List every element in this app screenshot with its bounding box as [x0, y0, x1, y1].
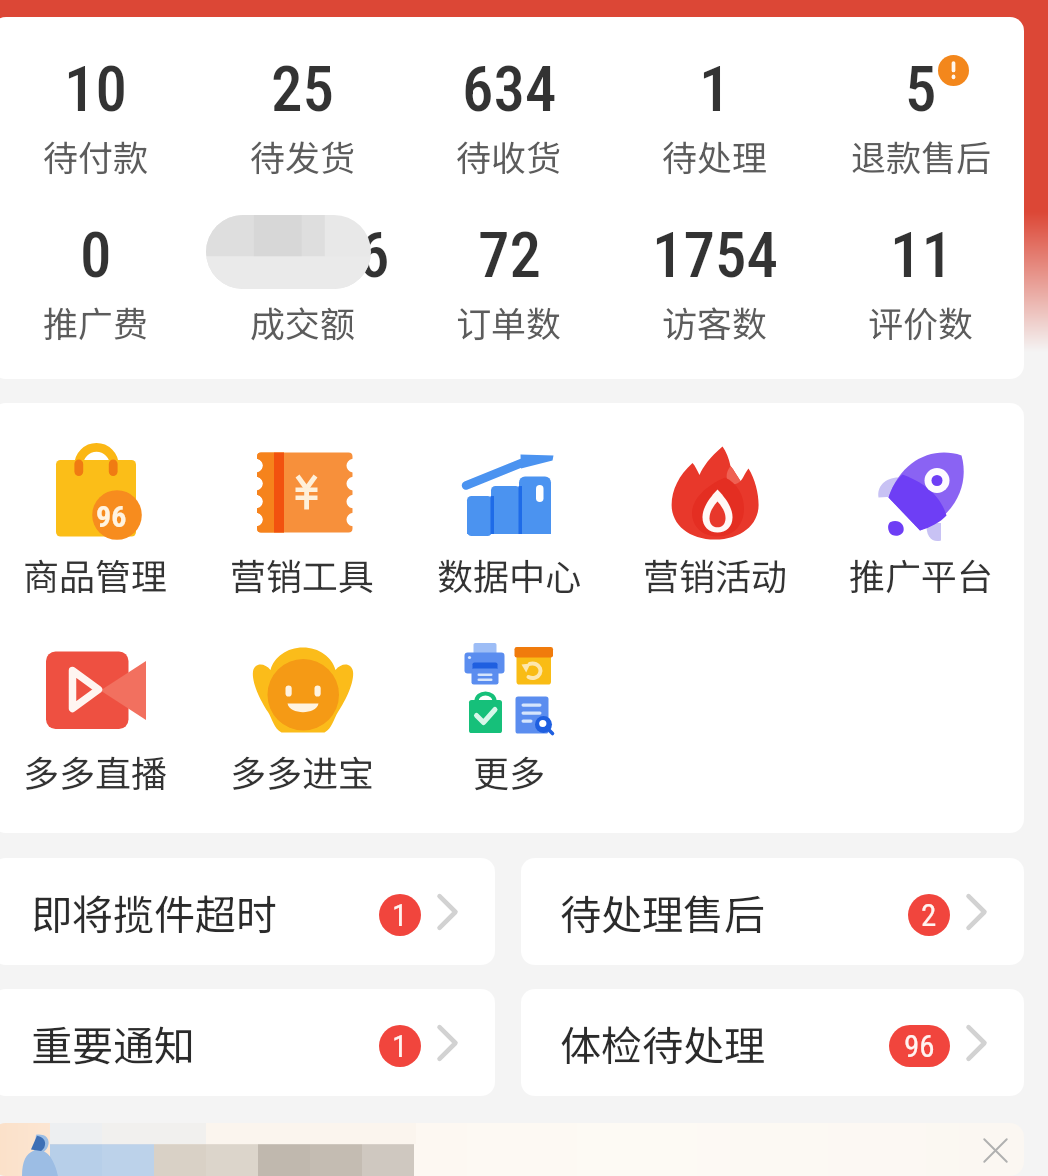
- staticText: 体检待处理: [560, 1013, 765, 1072]
- staticText: 营销活动: [643, 548, 788, 600]
- staticText: 1: [392, 1028, 408, 1064]
- staticText: 重要通知: [31, 1013, 195, 1072]
- button[interactable]: 关闭: [969, 1124, 1021, 1176]
- staticText: 推广费: [43, 296, 149, 347]
- staticText: 营销工具: [230, 548, 375, 600]
- staticText: 待付款: [43, 130, 149, 181]
- button[interactable]: 待处理售后: [521, 858, 1024, 965]
- button[interactable]: 96: [0, 443, 199, 600]
- button[interactable]: 25: [199, 53, 406, 181]
- staticText: 待处理售后: [560, 882, 765, 941]
- button[interactable]: 11: [818, 219, 1024, 347]
- button[interactable]: 多多进宝: [199, 640, 406, 797]
- staticText: 更多: [473, 745, 546, 797]
- button[interactable]: 72: [406, 219, 612, 347]
- button[interactable]: 营销工具: [199, 443, 406, 600]
- staticText: 推广平台: [849, 548, 994, 600]
- button[interactable]: 多多直播: [0, 640, 199, 797]
- staticText: 1: [699, 53, 731, 127]
- staticText: 数据中心: [437, 548, 582, 600]
- staticText: 25: [271, 53, 334, 127]
- button[interactable]: 营销活动: [612, 443, 818, 600]
- staticText: 访客数: [662, 296, 768, 347]
- staticText: 1: [392, 897, 408, 933]
- button[interactable]: 即将揽件超时: [0, 858, 495, 965]
- button[interactable]: 体检待处理: [521, 989, 1024, 1096]
- staticText: 11: [890, 219, 953, 293]
- staticText: 待收货: [456, 130, 562, 181]
- button[interactable]: 0: [0, 219, 199, 347]
- staticText: 72: [478, 219, 541, 293]
- button[interactable]: 6: [199, 219, 406, 347]
- staticText: 0: [80, 219, 112, 293]
- button[interactable]: 重要通知: [0, 989, 495, 1096]
- staticText: 订单数: [456, 296, 562, 347]
- staticText: 96: [904, 1028, 935, 1064]
- staticText: 1754: [652, 219, 778, 293]
- staticText: 成交额: [250, 296, 356, 347]
- button[interactable]: 10: [0, 53, 199, 181]
- staticText: 即将揽件超时: [31, 882, 277, 941]
- staticText: 评价数: [868, 296, 974, 347]
- staticText: 多多进宝: [230, 745, 375, 797]
- staticText: 商品管理: [23, 548, 168, 600]
- staticText: 待处理: [662, 130, 768, 181]
- staticText: 多多直播: [23, 745, 168, 797]
- staticText: 10: [64, 53, 127, 127]
- button[interactable]: 634: [406, 53, 612, 181]
- staticText: 96: [96, 499, 127, 534]
- button[interactable]: 推广平台: [818, 443, 1024, 600]
- button[interactable]: 更多: [406, 640, 612, 797]
- staticText: 634: [462, 53, 557, 127]
- staticText: 待发货: [250, 130, 356, 181]
- button[interactable]: 5: [818, 53, 1024, 181]
- button[interactable]: 1: [612, 53, 818, 181]
- staticText: 5: [905, 53, 937, 127]
- button[interactable]: 1754: [612, 219, 818, 347]
- staticText: 2: [921, 897, 937, 933]
- staticText: 6: [358, 219, 390, 293]
- staticText: 退款售后: [851, 130, 992, 181]
- button[interactable]: 数据中心: [406, 443, 612, 600]
